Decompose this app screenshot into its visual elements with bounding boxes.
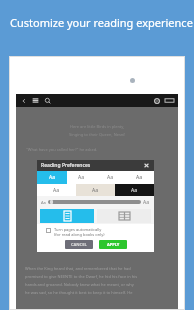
staticText: Aa: [41, 200, 46, 205]
staticText: (for read along books only): [54, 232, 105, 237]
staticText: Here are little Birds in plenty,: [70, 124, 125, 129]
button[interactable]: Aa: [125, 171, 154, 184]
button[interactable]: More: [165, 97, 174, 104]
button[interactable]: Settings: [153, 97, 161, 105]
staticText: Aa: [107, 174, 114, 181]
staticText: Reading Preferences: [41, 162, 91, 169]
button[interactable]: Aa: [115, 184, 154, 196]
staticText: Aa: [92, 187, 99, 194]
button[interactable]: Single column: [40, 209, 94, 223]
staticText: Aa: [78, 174, 85, 181]
button[interactable]: APPLY: [99, 240, 127, 249]
button[interactable]: Contents: [31, 96, 40, 105]
staticText: Singing to their Queen, Nesni!: [69, 132, 126, 137]
staticText: Aa: [131, 187, 138, 194]
staticText: Aa: [136, 174, 143, 181]
staticText: CANCEL: [71, 242, 87, 247]
staticText: APPLY: [107, 242, 120, 247]
staticText: "What have you called her?" he asked.: [26, 147, 98, 152]
staticText: Aa: [143, 199, 150, 206]
staticText: Customize your reading experience: [10, 15, 193, 30]
button[interactable]: Turn pages automatically: [46, 227, 154, 237]
button[interactable]: Close: [143, 162, 150, 169]
button[interactable]: Aa: [76, 184, 115, 196]
staticText: Aa: [53, 187, 60, 194]
button[interactable]: Aa: [96, 171, 125, 184]
button[interactable]: CANCEL: [65, 240, 93, 249]
button[interactable]: Aa: [67, 171, 96, 184]
staticText: he was sad, so he thought it best to kee…: [25, 290, 133, 295]
staticText: promised to give NEENTE to the Dwarf, he…: [25, 274, 138, 279]
button[interactable]: Two columns: [97, 209, 151, 223]
staticText: Turn pages automatically: [54, 227, 102, 232]
button[interactable]: Search: [44, 97, 52, 105]
staticText: When the King heard that, and remembered…: [25, 266, 131, 271]
staticText: hands and groaned. Nobody knew what he m…: [25, 282, 134, 287]
staticText: Aa: [49, 174, 56, 181]
button[interactable]: Aa: [37, 171, 67, 184]
button[interactable]: Back: [20, 97, 28, 105]
button[interactable]: Aa: [37, 184, 76, 196]
button[interactable]: Font size: [48, 200, 141, 204]
